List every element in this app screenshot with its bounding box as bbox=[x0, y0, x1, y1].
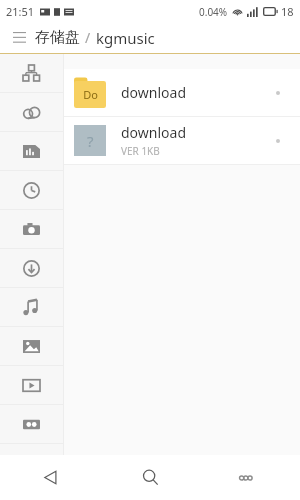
button[interactable]: More options bbox=[264, 79, 292, 107]
button[interactable]: Videos bbox=[0, 366, 63, 405]
button[interactable]: Camera bbox=[0, 210, 63, 249]
button[interactable]: Menu bbox=[8, 27, 30, 49]
button[interactable]: Documents bbox=[0, 132, 63, 171]
button[interactable]: Music bbox=[0, 288, 63, 327]
button[interactable]: Archives bbox=[0, 405, 63, 444]
button[interactable]: Back bbox=[0, 455, 100, 500]
button[interactable]: Do bbox=[64, 69, 300, 116]
staticText: VER 1KB bbox=[121, 144, 160, 158]
staticText: 18 bbox=[281, 4, 294, 19]
staticText: ? bbox=[87, 131, 94, 151]
button[interactable]: Images bbox=[0, 327, 63, 366]
staticText: download bbox=[121, 123, 187, 142]
staticText: / bbox=[85, 28, 91, 47]
staticText: 0.04% bbox=[199, 5, 228, 19]
staticText: 存储盘 bbox=[35, 28, 80, 47]
button[interactable]: ? bbox=[64, 117, 300, 164]
staticText: download bbox=[121, 83, 187, 102]
button[interactable]: More options bbox=[264, 127, 292, 155]
button[interactable]: Recent apps bbox=[200, 455, 300, 500]
staticText: kgmusic bbox=[96, 28, 155, 48]
button[interactable]: Downloads bbox=[0, 249, 63, 288]
button[interactable]: Categories bbox=[0, 54, 63, 93]
button[interactable]: Cloud bbox=[0, 93, 63, 132]
button[interactable]: Recent bbox=[0, 171, 63, 210]
staticText: Do bbox=[83, 87, 98, 102]
staticText: 21:51 bbox=[6, 4, 35, 19]
button[interactable]: Home search bbox=[100, 455, 200, 500]
